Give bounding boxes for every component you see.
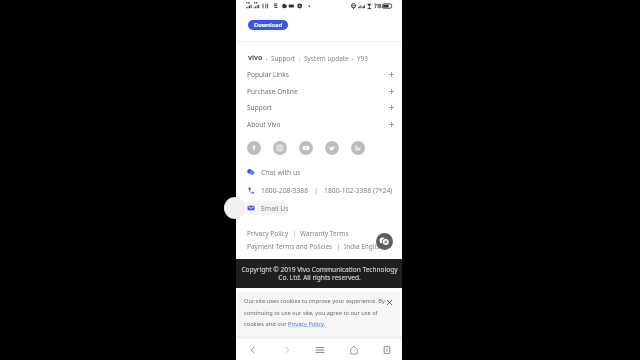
button[interactable]: Home xyxy=(343,339,364,360)
button[interactable]: Email Us xyxy=(247,201,289,215)
button[interactable]: Download xyxy=(248,20,288,30)
staticText: Email Us xyxy=(261,204,289,213)
staticText: Download xyxy=(254,21,282,29)
staticText: › xyxy=(263,55,271,62)
button[interactable]: Back xyxy=(242,339,263,360)
staticText: Our site uses cookies to improve your ex… xyxy=(244,297,385,328)
button[interactable]: Support xyxy=(236,99,402,116)
staticText: About Vivo xyxy=(247,120,281,129)
staticText: vivo xyxy=(248,53,263,63)
button[interactable]: Warranty Terms xyxy=(300,229,349,238)
staticText: Popular Links xyxy=(247,70,289,79)
staticText: › xyxy=(349,55,357,62)
button[interactable]: Payment Terms and Policies xyxy=(247,242,333,251)
staticText: | xyxy=(289,229,300,238)
button[interactable]: 1800-208-3388 xyxy=(261,186,309,195)
staticText: System update xyxy=(304,54,349,63)
button[interactable]: Chat with us xyxy=(376,233,393,250)
button[interactable]: Close xyxy=(383,296,395,308)
button[interactable]: Facebook xyxy=(247,141,261,155)
staticText: Chat with us xyxy=(261,168,301,177)
staticText: | xyxy=(309,186,324,195)
button[interactable]: Popular Links xyxy=(236,66,402,83)
button[interactable]: Twitter xyxy=(325,141,339,155)
staticText: | xyxy=(333,242,344,251)
button[interactable]: YouTube xyxy=(299,141,313,155)
button[interactable]: Instagram xyxy=(273,141,287,155)
button[interactable]: LinkedIn xyxy=(351,141,365,155)
staticText: Purchase Online xyxy=(247,87,298,96)
button[interactable]: Privacy Policy xyxy=(247,229,289,238)
staticText: Support xyxy=(247,103,272,112)
button[interactable]: About Vivo xyxy=(236,116,402,133)
staticText: Support xyxy=(271,54,296,63)
button[interactable]: Purchase Online xyxy=(236,83,402,100)
staticText: Y93 xyxy=(357,54,368,63)
button[interactable]: Menu xyxy=(309,339,330,360)
button[interactable]: Forward xyxy=(276,339,297,360)
button[interactable]: India English xyxy=(344,242,384,251)
button[interactable]: Chat with us xyxy=(247,165,301,179)
staticText: › xyxy=(296,55,304,62)
button[interactable]: 1800-102-3388 (7*24) xyxy=(324,186,393,195)
staticText: Copyright © 2019 Vivo Communication Tech… xyxy=(241,265,398,282)
button[interactable]: Tabs xyxy=(376,339,397,360)
